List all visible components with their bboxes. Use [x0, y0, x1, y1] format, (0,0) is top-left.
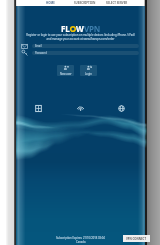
staticText: HOME	[46, 1, 55, 5]
button[interactable]: Login	[80, 65, 97, 76]
button[interactable]: Email	[32, 44, 139, 48]
staticText: Login	[85, 72, 92, 76]
staticText: FL	[61, 23, 70, 34]
button[interactable]: HOME	[46, 1, 55, 5]
button[interactable]: New user	[57, 65, 74, 76]
button[interactable]: Password	[32, 51, 139, 55]
staticText: Subscription Expires: 21/10/2018 03:04	[56, 236, 105, 240]
staticText: Email	[35, 44, 42, 48]
button[interactable]: Connect	[75, 103, 86, 114]
button[interactable]: Email	[21, 43, 28, 50]
staticText: SELECT SERVER	[106, 1, 128, 5]
staticText: VPN CONNECT	[126, 237, 147, 241]
button[interactable]: Password	[21, 49, 28, 56]
staticText: VPN	[84, 23, 100, 34]
staticText: Canada	[76, 240, 86, 244]
staticText: W	[76, 23, 84, 34]
staticText: Register or login to use your subscripti…	[24, 33, 137, 40]
staticText: SUBSCRIPTION	[74, 1, 96, 5]
button[interactable]: Global servers	[116, 103, 127, 114]
button[interactable]: SUBSCRIPTION	[74, 1, 96, 5]
button[interactable]: Server list	[33, 103, 44, 114]
button[interactable]: SELECT SERVER	[106, 1, 128, 5]
staticText: New user	[60, 72, 72, 76]
button[interactable]: VPN CONNECT	[123, 235, 150, 242]
staticText: Password	[35, 51, 47, 55]
